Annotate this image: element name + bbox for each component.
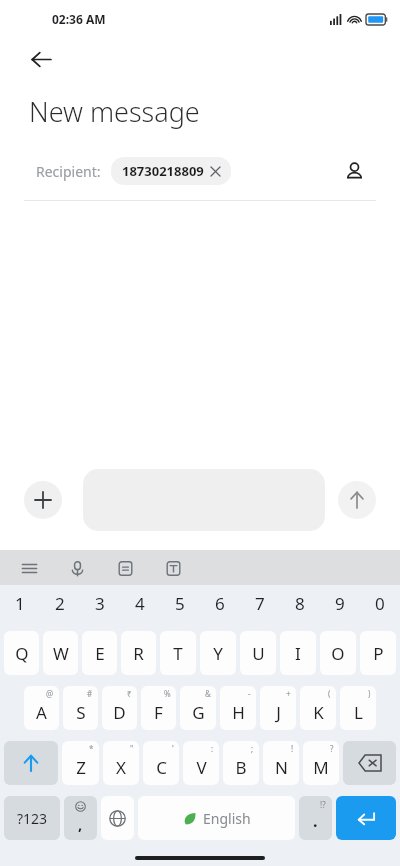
button[interactable]: & [180,686,216,730]
staticText: V [196,756,207,779]
button[interactable]: 2 [40,585,80,622]
button[interactable]: 18730218809 [111,157,231,185]
staticText: - [248,688,251,699]
staticText: O [331,642,345,665]
staticText: D [113,701,126,724]
button[interactable]: 0 [360,585,400,622]
staticText: New message [29,93,200,130]
staticText: 6 [215,592,225,615]
button[interactable]: ) [340,686,376,730]
staticText: 7 [255,592,265,615]
staticText: ' [172,743,174,754]
staticText: % [164,688,171,699]
staticText: Y [213,642,223,665]
button[interactable]: T [160,631,196,675]
button[interactable]: + [260,686,296,730]
button[interactable]: Contacts [334,151,374,191]
staticText: W [53,642,69,665]
staticText: + [286,688,291,699]
button[interactable]: Y [200,631,236,675]
staticText: F [154,701,163,724]
button[interactable]: ; [223,741,259,785]
button[interactable]: Period [299,796,332,840]
button[interactable]: ? [303,741,339,785]
staticText: 3 [95,592,105,615]
button[interactable]: * [62,741,99,785]
staticText: , [78,814,83,834]
staticText: 02:36 AM [52,11,106,27]
staticText: 0 [375,592,385,615]
button[interactable]: Back [20,38,62,80]
button[interactable]: Clipboard [112,555,138,581]
staticText: H [232,701,245,724]
button[interactable]: Add attachment [24,481,62,519]
staticText: ₹ [127,688,132,699]
staticText: & [205,688,211,699]
staticText: N [275,756,288,779]
button[interactable]: " [103,741,139,785]
staticText: ; [251,743,254,754]
button[interactable]: E [82,631,117,675]
button[interactable]: O [320,631,356,675]
button[interactable]: ! [263,741,299,785]
staticText: ? [330,743,334,754]
button[interactable]: 4 [120,585,160,622]
button[interactable]: : [183,741,219,785]
staticText: !? [320,799,326,810]
button[interactable]: R [121,631,156,675]
button[interactable]: 8 [280,585,320,622]
staticText: ?123 [17,809,48,828]
button[interactable]: 9 [320,585,360,622]
button[interactable]: - [220,686,256,730]
staticText: " [130,743,134,754]
button[interactable]: @ [24,686,59,730]
staticText: R [133,642,144,665]
button[interactable]: ( [300,686,336,730]
button[interactable]: U [240,631,276,675]
button[interactable]: # [63,686,98,730]
button[interactable]: % [141,686,176,730]
staticText: T [173,642,183,665]
staticText: C [156,756,167,779]
button[interactable]: Q [4,631,39,675]
button[interactable]: ?123 [4,796,60,840]
button[interactable]: Enter [336,796,396,840]
button[interactable]: Backspace [343,741,396,785]
staticText: ) [368,688,371,699]
staticText: 1 [15,592,25,615]
button[interactable]: 6 [200,585,240,622]
button[interactable]: Voice input [64,555,90,581]
button[interactable]: 1 [0,585,40,622]
button[interactable]: 3 [80,585,120,622]
button[interactable]: Text settings [160,555,186,581]
staticText: @ [46,688,54,699]
staticText: 9 [335,592,345,615]
button[interactable]: Menu [16,555,42,581]
button[interactable]: Emoji and comma [64,796,97,840]
staticText: M [313,756,329,779]
staticText: 5 [175,592,185,615]
staticText: P [373,642,384,665]
staticText: A [36,701,47,724]
staticText: U [252,642,265,665]
staticText: E [95,642,105,665]
button[interactable]: 7 [240,585,280,622]
button[interactable]: P [360,631,396,675]
button[interactable]: I [280,631,316,675]
staticText: Q [15,642,29,665]
staticText: J [276,701,281,724]
button[interactable]: Shift [4,741,58,785]
button[interactable]: 5 [160,585,200,622]
button[interactable]: Change language [101,796,134,840]
staticText: 2 [55,592,65,615]
staticText: : [211,743,214,754]
staticText: L [354,701,363,724]
button[interactable]: ₹ [102,686,137,730]
staticText: # [87,688,93,699]
button[interactable]: W [43,631,78,675]
staticText: 8 [295,592,305,615]
button[interactable]: English [138,796,295,840]
button[interactable]: ' [143,741,179,785]
button[interactable]: Send [338,481,376,519]
